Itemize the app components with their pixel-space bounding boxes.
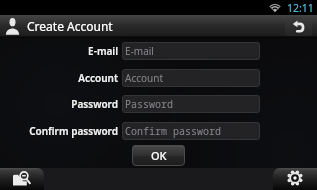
- staticText: E-mail: [0, 44, 118, 58]
- staticText: Confirm password: [125, 124, 221, 138]
- staticText: 12:11: [287, 1, 314, 15]
- button[interactable]: Search images: [0, 168, 44, 190]
- staticText: Password: [125, 97, 173, 111]
- staticText: E-mail: [125, 44, 154, 58]
- staticText: OK: [151, 148, 167, 163]
- button[interactable]: OK: [132, 145, 185, 166]
- button[interactable]: Account: [122, 69, 260, 87]
- button[interactable]: Password: [122, 95, 260, 113]
- staticText: Account: [0, 71, 118, 85]
- staticText: Create Account: [27, 18, 113, 34]
- staticText: Password: [0, 97, 118, 111]
- button[interactable]: Back: [285, 17, 312, 36]
- staticText: Confirm password: [0, 124, 118, 138]
- button[interactable]: E-mail: [122, 42, 260, 60]
- button[interactable]: Confirm password: [122, 122, 260, 140]
- button[interactable]: Settings: [273, 168, 317, 190]
- staticText: Account: [125, 71, 164, 85]
